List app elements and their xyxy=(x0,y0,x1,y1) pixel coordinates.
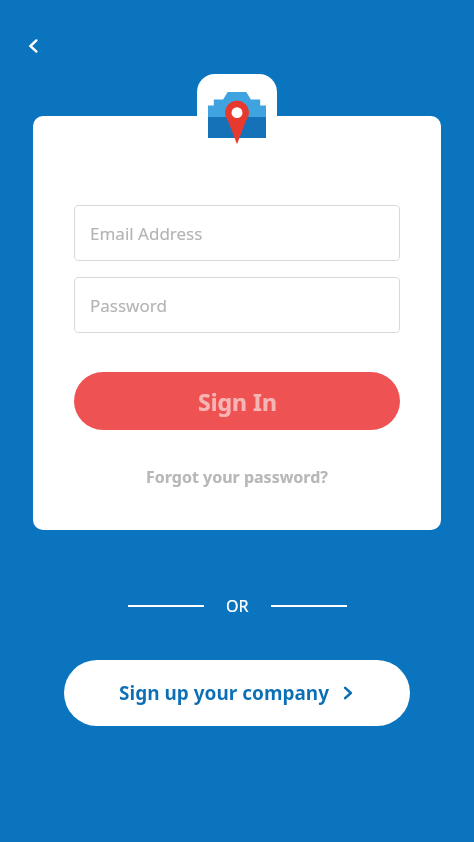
button[interactable]: Back xyxy=(14,26,54,66)
staticText: Sign In xyxy=(198,386,277,417)
button[interactable]: Sign up your company xyxy=(64,660,410,726)
staticText: Sign up your company xyxy=(119,680,330,706)
button[interactable]: Email Address xyxy=(74,205,400,261)
staticText: Forgot your password? xyxy=(146,466,328,488)
staticText: Password xyxy=(90,294,167,317)
staticText: Email Address xyxy=(90,222,203,245)
button[interactable]: Password xyxy=(74,277,400,333)
button[interactable]: Forgot your password? xyxy=(122,460,352,494)
button[interactable]: Sign In xyxy=(74,372,400,430)
staticText: OR xyxy=(226,595,249,617)
